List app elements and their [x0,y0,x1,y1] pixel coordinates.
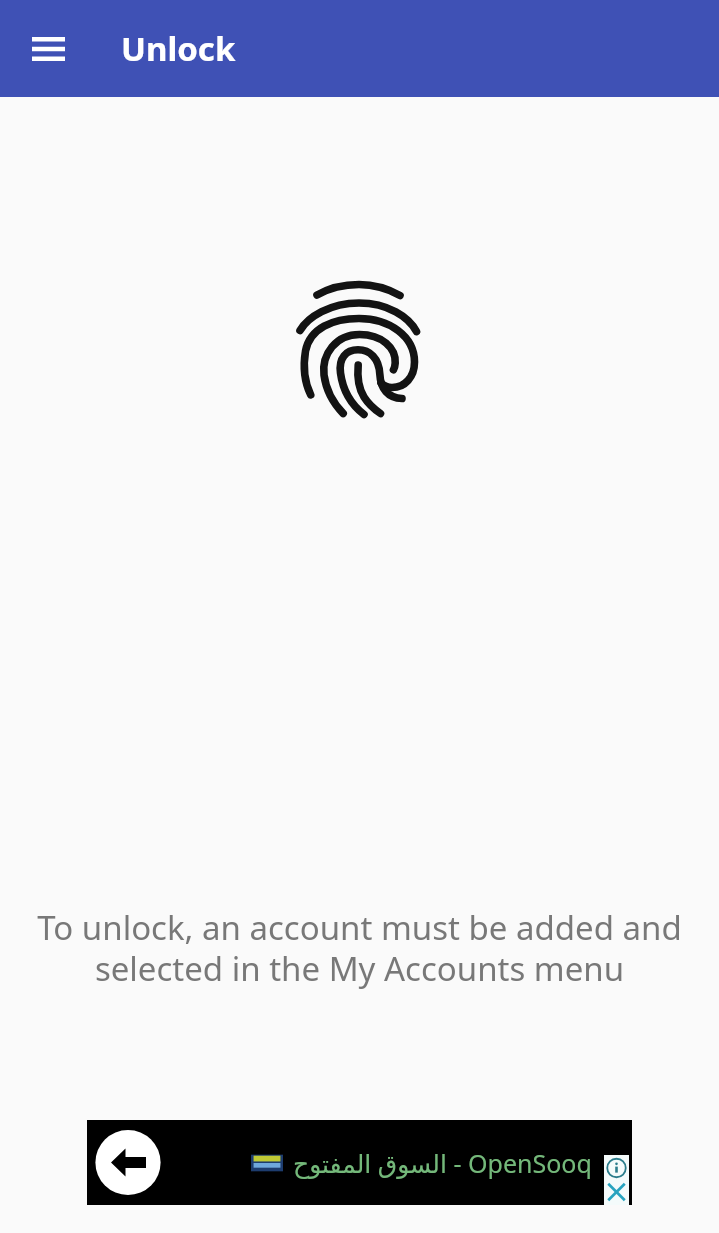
staticText: To unlock, an account must be added and … [28,905,691,991]
button[interactable]: Open navigation menu [13,14,83,84]
staticText: Unlock [121,26,236,71]
button[interactable]: Ad information [604,1155,629,1205]
staticText: السوق المفتوح - OpenSooq [293,1146,592,1180]
button[interactable]: Back [87,1120,632,1205]
other: Back [87,1120,632,1205]
